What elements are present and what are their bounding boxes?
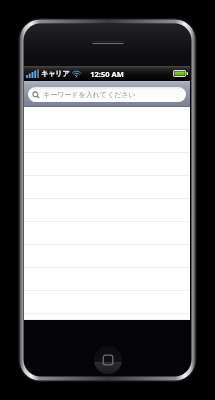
- button[interactable]: [24, 245, 190, 268]
- button[interactable]: [24, 268, 190, 291]
- staticText: キャリア: [41, 69, 70, 78]
- button[interactable]: [24, 199, 190, 222]
- button[interactable]: キーワードを入れてください: [24, 81, 190, 107]
- staticText: キーワードを入れてください: [43, 90, 136, 99]
- button[interactable]: [24, 107, 190, 130]
- button[interactable]: [24, 222, 190, 245]
- button[interactable]: [24, 176, 190, 199]
- button[interactable]: [24, 314, 190, 320]
- staticText: 12:50 AM: [90, 69, 124, 79]
- button[interactable]: [24, 130, 190, 153]
- button[interactable]: [24, 291, 190, 314]
- button[interactable]: [24, 153, 190, 176]
- button[interactable]: Home: [94, 346, 122, 374]
